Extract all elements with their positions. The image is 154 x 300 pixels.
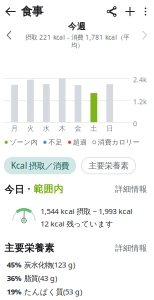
button[interactable]: 詳細情報 [112, 240, 150, 256]
staticText: 今週 [68, 21, 86, 32]
staticText: 不足 [48, 138, 62, 147]
button[interactable]: Share [103, 3, 121, 20]
staticText: 0 [133, 119, 137, 128]
button[interactable]: 詳細情報 [112, 181, 150, 197]
staticText: 金 [74, 124, 81, 133]
staticText: 主要栄養素 [88, 160, 128, 171]
staticText: 摂取 221 kcal - 消費 1,781 kcal（平均） [25, 33, 129, 49]
staticText: 1.2k [133, 97, 147, 106]
button[interactable]: Add [121, 3, 139, 20]
staticText: 今日 · [4, 182, 33, 196]
staticText: 2.4k [133, 75, 147, 84]
staticText: 詳細情報 [115, 184, 147, 194]
button[interactable]: 主要栄養素 [81, 157, 135, 174]
staticText: 炭水化物(123 g) [24, 259, 75, 270]
button[interactable]: Next week [137, 25, 154, 45]
staticText: 詳細情報 [115, 243, 147, 253]
button[interactable]: Kcal 摂取／消費 [4, 157, 76, 174]
staticText: 19% [7, 287, 22, 297]
staticText: 超過 [73, 138, 87, 147]
staticText: 水 [43, 124, 50, 133]
staticText: 範囲内 [33, 183, 63, 195]
button[interactable]: More options [139, 3, 152, 20]
staticText: 日 [106, 124, 113, 133]
staticText: 12 kcal 残っています [40, 219, 113, 229]
staticText: 食事 [21, 4, 43, 19]
staticText: Kcal 摂取／消費 [11, 160, 69, 171]
staticText: 脂質(43 g) [24, 273, 57, 283]
staticText: 36% [7, 273, 22, 283]
button[interactable]: Previous week [0, 25, 16, 45]
staticText: たんぱく質(53 g) [24, 287, 82, 297]
staticText: 1,544 kcal 摂取 − 1,993 kcal [40, 206, 132, 216]
staticText: ゾーン内 [10, 138, 38, 147]
button[interactable]: Back [0, 3, 21, 20]
staticText: 消費カロリー [98, 138, 140, 147]
staticText: 45% [7, 259, 22, 270]
staticText: 主要栄養素 [4, 242, 54, 254]
staticText: 火 [27, 124, 34, 133]
staticText: 土 [90, 124, 97, 133]
staticText: 木 [59, 124, 66, 133]
staticText: 月 [11, 124, 18, 133]
